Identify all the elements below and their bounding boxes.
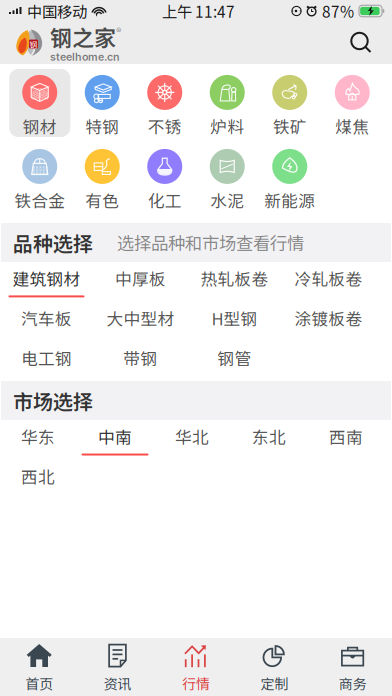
staticText: 华东	[21, 424, 55, 448]
button[interactable]: 热轧板卷	[187, 262, 281, 302]
button[interactable]: 华北	[153, 420, 230, 460]
staticText: 定制	[260, 673, 288, 693]
button[interactable]: 西南	[307, 420, 384, 460]
staticText: 资讯	[104, 673, 132, 693]
staticText: 中国移动	[27, 0, 87, 22]
staticText: 建筑钢材	[12, 266, 80, 290]
staticText: 品种选择	[13, 228, 93, 257]
staticText: 炉料	[210, 114, 244, 138]
button[interactable]: 铁矿	[259, 69, 320, 137]
staticText: 行情	[182, 673, 210, 693]
staticText: 西北	[21, 464, 55, 488]
staticText: 华北	[175, 424, 209, 448]
staticText: 钢之家	[50, 21, 116, 52]
button[interactable]: 中厚板	[93, 262, 187, 302]
staticText: 带钢	[123, 346, 157, 370]
staticText: 选择品种和市场查看行情	[117, 230, 304, 255]
button[interactable]: 涂镀板卷	[281, 302, 375, 341]
button[interactable]: 钢管	[187, 341, 281, 381]
staticText: 涂镀板卷	[294, 306, 362, 330]
staticText: 热轧板卷	[200, 266, 268, 290]
button[interactable]: 商务	[314, 638, 392, 696]
staticText: 钢材	[23, 114, 57, 138]
button[interactable]: 电工钢	[0, 341, 93, 381]
staticText: 市场选择	[13, 386, 93, 415]
button[interactable]: 建筑钢材	[0, 262, 93, 302]
staticText: 铁矿	[273, 114, 307, 138]
staticText: steelhome.cn	[50, 50, 120, 63]
button[interactable]: H型钢	[187, 302, 281, 341]
button[interactable]: 钢材	[9, 69, 70, 137]
button[interactable]: 新能源	[259, 143, 320, 211]
staticText: 不锈	[148, 114, 182, 138]
staticText: ®	[116, 26, 121, 35]
staticText: 特钢	[85, 114, 119, 138]
staticText: 首页	[25, 673, 53, 693]
button[interactable]: 定制	[235, 638, 314, 696]
staticText: 大中型材	[106, 306, 174, 330]
button[interactable]: 水泥	[197, 143, 258, 211]
button[interactable]: 有色	[72, 143, 133, 211]
staticText: 中厚板	[115, 266, 166, 290]
button[interactable]: 煤焦	[322, 69, 383, 137]
button[interactable]: 首页	[0, 638, 78, 696]
staticText: 有色	[85, 188, 119, 212]
staticText: 新能源	[264, 188, 315, 212]
staticText: 上午 11:47	[162, 0, 235, 22]
staticText: 东北	[252, 424, 286, 448]
staticText: 电工钢	[21, 346, 72, 370]
button[interactable]: 铁合金	[9, 143, 70, 211]
staticText: 水泥	[210, 188, 244, 212]
staticText: 商务	[339, 673, 367, 693]
button[interactable]: 行情	[157, 638, 235, 696]
button[interactable]: 汽车板	[0, 302, 93, 341]
button[interactable]: 带钢	[93, 341, 187, 381]
staticText: H型钢	[211, 306, 257, 330]
staticText: 钢管	[217, 346, 251, 370]
staticText: 化工	[148, 188, 182, 212]
staticText: 汽车板	[21, 306, 72, 330]
button[interactable]: Search	[338, 22, 384, 64]
button[interactable]: 西北	[0, 460, 76, 499]
staticText: 冷轧板卷	[294, 266, 362, 290]
button[interactable]: 不锈	[134, 69, 195, 137]
button[interactable]: 特钢	[72, 69, 133, 137]
staticText: 西南	[329, 424, 363, 448]
button[interactable]: 冷轧板卷	[281, 262, 375, 302]
button[interactable]: 华东	[0, 420, 76, 460]
staticText: 87%	[322, 0, 354, 22]
button[interactable]: 中南	[76, 420, 153, 460]
button[interactable]: 东北	[230, 420, 307, 460]
staticText: 煤焦	[335, 114, 369, 138]
button[interactable]: 炉料	[197, 69, 258, 137]
button[interactable]: 大中型材	[93, 302, 187, 341]
button[interactable]: 资讯	[78, 638, 157, 696]
button[interactable]: 化工	[134, 143, 195, 211]
staticText: 铁合金	[14, 188, 65, 212]
staticText: 钢	[29, 38, 37, 50]
staticText: 中南	[98, 424, 132, 448]
